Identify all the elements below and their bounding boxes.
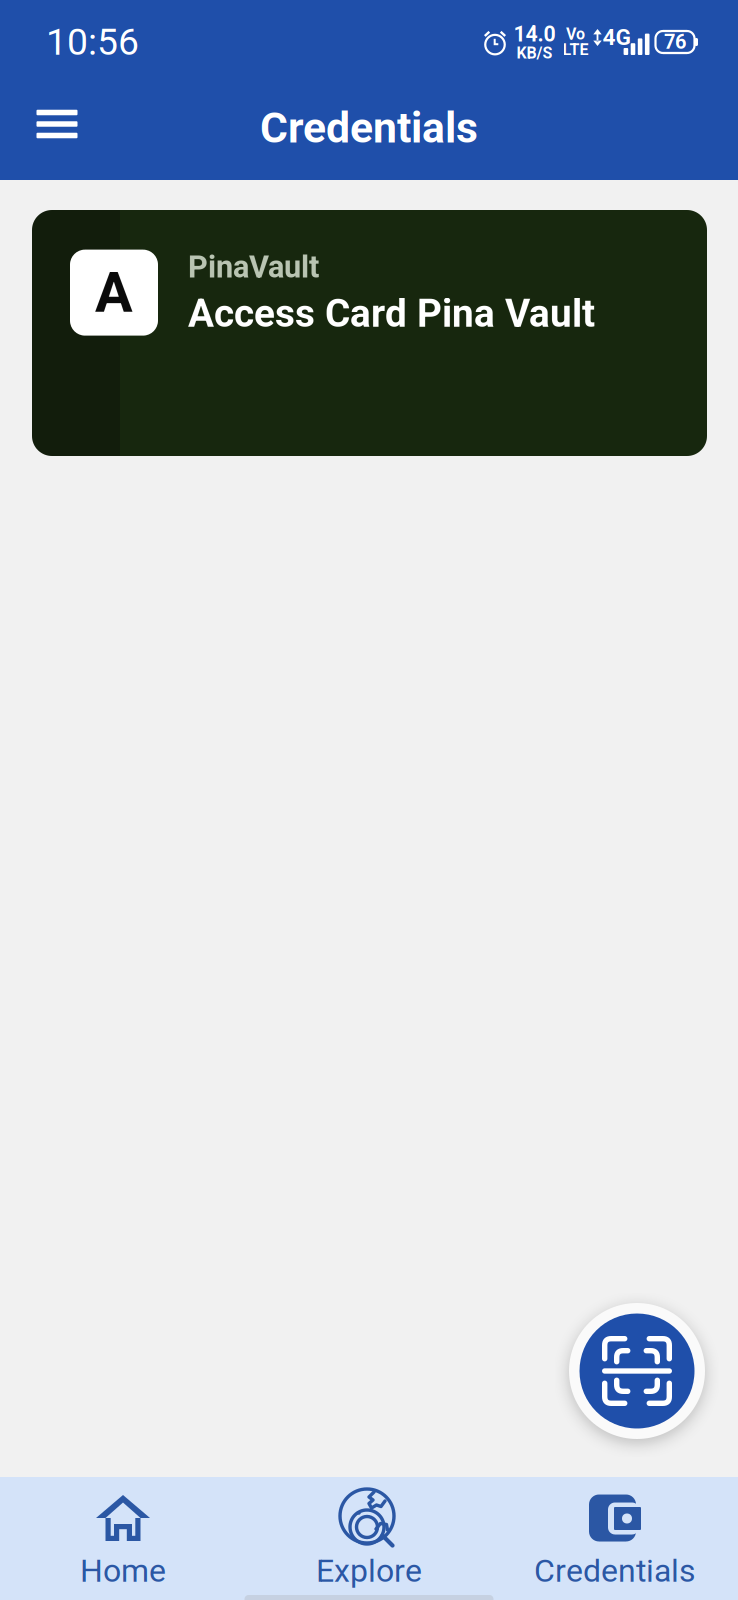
staticText: 4G	[602, 24, 630, 51]
staticText: KB/S	[516, 44, 552, 62]
button[interactable]: Scan QR code	[567, 1301, 707, 1441]
button[interactable]: Credentials	[492, 1477, 738, 1600]
staticText: 76	[664, 30, 686, 54]
staticText: A	[95, 260, 133, 325]
staticText: Vo	[566, 25, 585, 44]
button[interactable]: Home	[0, 1477, 246, 1600]
button[interactable]: Explore	[246, 1477, 492, 1600]
staticText: Access Card Pina Vault	[188, 291, 595, 336]
staticText: 10:56	[46, 20, 139, 64]
staticText: 14.0	[513, 22, 555, 47]
button[interactable]: Open navigation menu	[18, 93, 96, 171]
button[interactable]: A	[32, 210, 707, 456]
staticText: Explore	[316, 1552, 422, 1589]
staticText: Home	[80, 1552, 166, 1589]
staticText: Credentials	[260, 103, 478, 153]
staticText: Credentials	[534, 1552, 696, 1589]
staticText: LTE	[562, 40, 588, 59]
staticText: PinaVault	[188, 249, 319, 285]
